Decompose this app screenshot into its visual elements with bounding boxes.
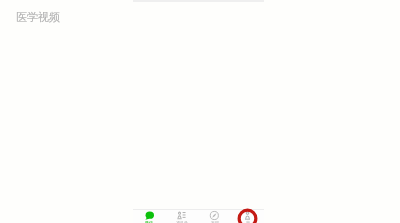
button[interactable]: Me [231, 209, 264, 223]
other: Me [243, 211, 252, 220]
staticText: 我 [246, 220, 250, 223]
other: Contacts [177, 211, 186, 220]
button[interactable]: Discover [198, 209, 231, 223]
staticText: 通讯录 [176, 220, 188, 223]
button[interactable]: WeChat [133, 209, 165, 223]
button[interactable]: Contacts [165, 209, 198, 223]
other: WeChat [145, 211, 154, 220]
staticText: 微信 [145, 220, 153, 223]
other: Discover [210, 211, 219, 220]
staticText: 发现 [211, 220, 219, 223]
staticText: 医学视频 [16, 10, 60, 24]
